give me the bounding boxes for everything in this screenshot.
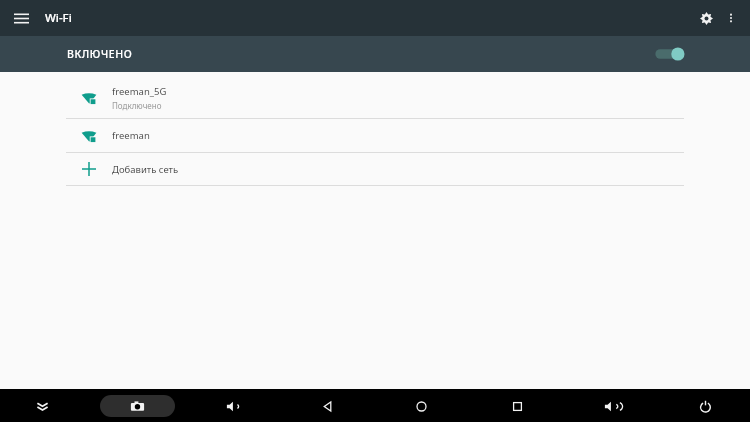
staticText: ВКЛЮЧЕНО [67,47,133,61]
button[interactable]: Hide navigation bar [26,390,58,422]
button[interactable]: More options [717,4,745,32]
staticText: Добавить сеть [112,163,179,176]
staticText: Подключено [112,100,162,111]
button[interactable]: Screenshot [100,395,175,417]
staticText: freeman [112,129,150,142]
staticText: Wi-Fi [45,10,72,26]
button[interactable]: freeman [66,119,684,152]
button[interactable]: Navigation menu [9,6,33,30]
button[interactable]: freeman_5G [66,78,684,118]
button[interactable]: Settings [692,4,720,32]
button[interactable]: Home [405,390,437,422]
button[interactable]: Wi-Fi on [654,43,688,65]
button[interactable]: Volume down [217,390,249,422]
button[interactable]: ВКЛЮЧЕНО [0,36,750,72]
button[interactable]: Screenshot [121,390,153,422]
button[interactable]: Volume up [595,390,627,422]
button[interactable]: Добавить сеть [66,153,684,185]
button[interactable]: Back [311,390,343,422]
button[interactable]: Power [689,390,721,422]
staticText: freeman_5G [112,85,167,98]
button[interactable]: Recent apps [501,390,533,422]
